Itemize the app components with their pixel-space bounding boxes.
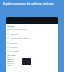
button[interactable]: Benefits [6,41,58,45]
staticText: Insurance [10,50,19,53]
staticText: Benefits [10,42,18,45]
button[interactable]: Insurance [6,49,58,53]
staticText: Mental health support [10,37,30,40]
staticText: Tips from experts [7,62,16,66]
button[interactable]: Wellness [6,45,58,49]
staticText: Find care [10,33,19,36]
staticText: The latest on staying healthy [7,54,16,62]
staticText: Explore resources for wellness and care [3,2,61,6]
button[interactable]: Mental health support [6,36,58,40]
staticText: Wellness [10,46,18,49]
button[interactable]: Find care [6,32,58,36]
staticText: Health [7,25,14,28]
staticText: Resources and support [7,28,27,31]
